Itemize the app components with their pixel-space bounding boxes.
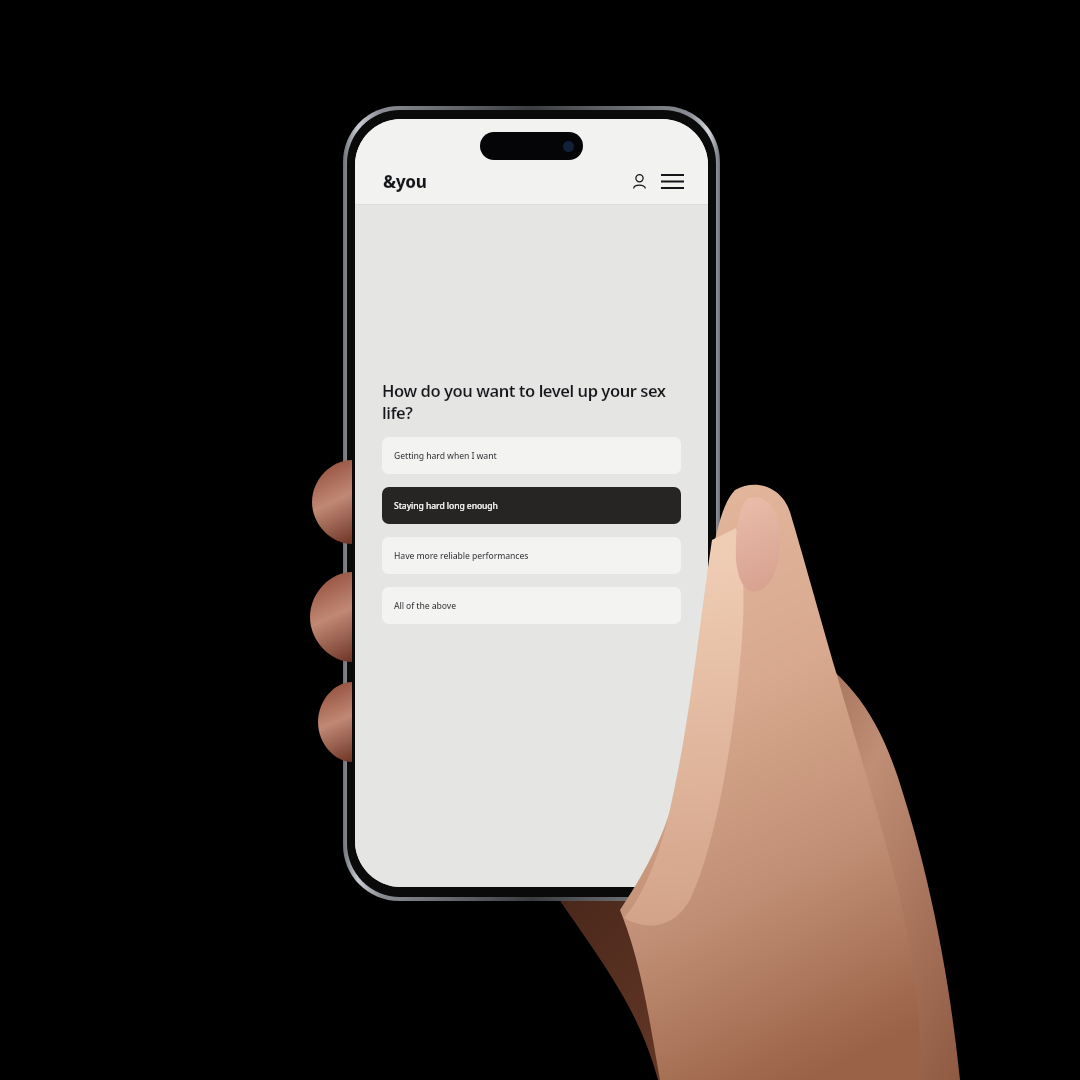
button[interactable]: Have more reliable performances (382, 537, 681, 574)
staticText: Getting hard when I want (394, 450, 497, 462)
button[interactable]: Getting hard when I want (382, 437, 681, 474)
button[interactable]: Account (627, 169, 651, 193)
staticText: All of the above (394, 600, 457, 612)
button[interactable]: Staying hard long enough (382, 487, 681, 524)
staticText: How do you want to level up your sex lif… (382, 379, 690, 423)
staticText: Staying hard long enough (394, 500, 498, 512)
button[interactable]: Menu (658, 169, 686, 193)
staticText: Have more reliable performances (394, 550, 529, 562)
staticText: &you (383, 170, 427, 193)
button[interactable]: All of the above (382, 587, 681, 624)
